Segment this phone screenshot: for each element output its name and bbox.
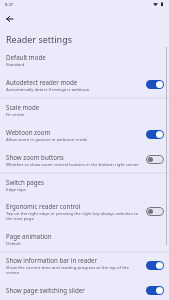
staticText: Show zoom buttons bbox=[6, 153, 64, 161]
staticText: Show the current time and reading progre… bbox=[6, 264, 143, 275]
button[interactable]: Show page switching slider bbox=[0, 280, 169, 300]
staticText: Allow zoom in gesture in webtoon mode bbox=[6, 136, 88, 142]
button[interactable] bbox=[146, 155, 164, 164]
button[interactable]: Webtoon zoom bbox=[0, 122, 169, 147]
button[interactable] bbox=[146, 261, 164, 270]
staticText: Ergonomic reader control bbox=[6, 202, 81, 210]
staticText: Autodetect reader mode bbox=[6, 78, 78, 86]
staticText: Switch pages bbox=[6, 178, 45, 186]
staticText: Fit center bbox=[6, 111, 25, 117]
staticText: Tap on the right edge or pressing the ri… bbox=[6, 210, 143, 221]
button[interactable]: Ergonomic reader control bbox=[0, 197, 169, 226]
button[interactable]: Show information bar in reader bbox=[0, 251, 169, 280]
button[interactable] bbox=[146, 80, 164, 89]
button[interactable]: Back bbox=[3, 13, 15, 25]
button[interactable]: Page animation bbox=[0, 226, 169, 251]
staticText: Automatically detect if manga is webtoon bbox=[6, 86, 90, 92]
button[interactable]: Default mode bbox=[0, 47, 169, 72]
staticText: Page animation bbox=[6, 232, 52, 240]
staticText: Edge taps bbox=[6, 186, 26, 192]
button[interactable]: Autodetect reader mode bbox=[0, 72, 169, 97]
button[interactable]: Show zoom buttons bbox=[0, 147, 169, 172]
button[interactable] bbox=[146, 130, 164, 139]
staticText: Webtoon zoom bbox=[6, 128, 51, 136]
button[interactable]: Scale mode bbox=[0, 97, 169, 122]
staticText: Reader settings bbox=[6, 33, 73, 45]
staticText: Show page switching slider bbox=[6, 286, 85, 294]
button[interactable]: Switch pages bbox=[0, 172, 169, 197]
staticText: 8:37 bbox=[5, 2, 13, 7]
staticText: Whether to show zoom control buttons in … bbox=[6, 161, 139, 167]
button[interactable] bbox=[146, 286, 164, 295]
staticText: Standard bbox=[6, 61, 25, 67]
staticText: Show information bar in reader bbox=[6, 256, 98, 264]
button[interactable] bbox=[146, 207, 164, 216]
staticText: Default mode bbox=[6, 53, 46, 61]
staticText: Scale mode bbox=[6, 103, 40, 111]
staticText: Default bbox=[6, 240, 21, 246]
